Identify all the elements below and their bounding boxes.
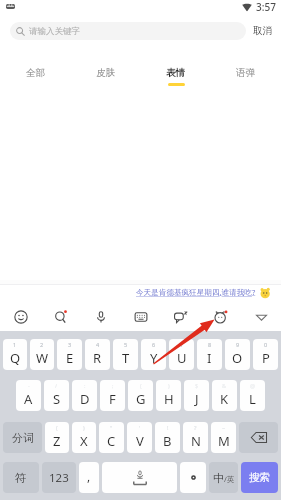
button[interactable]: 符 xyxy=(3,462,39,493)
staticText: 搜索 xyxy=(249,471,270,484)
button[interactable]: $ xyxy=(184,380,209,411)
staticText: 分词 xyxy=(12,431,34,445)
staticText: W xyxy=(36,349,49,367)
staticText: ( xyxy=(56,424,58,431)
staticText: 7 xyxy=(180,341,184,348)
button[interactable]: 语弹 xyxy=(211,48,281,90)
staticText: ; xyxy=(112,382,114,389)
staticText: : xyxy=(84,382,86,389)
staticText: U xyxy=(177,349,187,367)
button[interactable]: 7 xyxy=(169,339,194,370)
button[interactable]: 5 xyxy=(113,339,138,370)
staticText: ) xyxy=(83,424,85,431)
staticText: ' xyxy=(139,424,141,431)
button[interactable]: 表情 xyxy=(141,48,211,90)
staticText: 2 xyxy=(40,341,44,348)
staticText: 皮肤 xyxy=(96,67,116,79)
staticText: / xyxy=(55,382,58,389)
button[interactable]: ( xyxy=(128,380,153,411)
staticText: 0 xyxy=(264,341,268,348)
button[interactable]: @ xyxy=(240,380,265,411)
staticText: Z xyxy=(53,432,61,450)
button[interactable]: 取消 xyxy=(253,25,273,37)
button[interactable]: ; xyxy=(100,380,125,411)
button[interactable]: 123 xyxy=(42,462,76,493)
staticText: 3:57 xyxy=(256,0,276,14)
staticText: V xyxy=(136,432,144,450)
button[interactable]: 请输入关键字 xyxy=(10,22,246,40)
staticText: J xyxy=(195,390,199,408)
button[interactable]: 4 xyxy=(85,339,110,370)
button[interactable]: 皮肤 xyxy=(71,48,141,90)
staticText: 5 xyxy=(124,341,128,348)
button[interactable]: ! xyxy=(155,422,180,453)
button[interactable]: Emoji xyxy=(0,303,41,331)
button[interactable]: ) xyxy=(156,380,181,411)
staticText: 全部 xyxy=(26,67,46,79)
staticText: Q xyxy=(10,349,21,367)
staticText: N xyxy=(191,432,201,450)
button[interactable]: 搜索 xyxy=(241,462,278,493)
button[interactable]: 3 xyxy=(57,339,82,370)
staticText: $ xyxy=(195,382,199,389)
staticText: O xyxy=(232,349,243,367)
button[interactable]: Avatar xyxy=(201,303,241,331)
button[interactable]: Keyboard xyxy=(121,303,161,331)
button[interactable]: Search xyxy=(41,303,81,331)
staticText: 取消 xyxy=(253,25,273,37)
button[interactable]: ( xyxy=(45,422,69,453)
staticText: ( xyxy=(140,382,142,389)
staticText: ? xyxy=(194,424,197,431)
button[interactable]: 1 xyxy=(3,339,27,370)
staticText: & xyxy=(222,382,227,389)
staticText: H xyxy=(164,390,174,408)
staticText: G xyxy=(136,390,146,408)
button[interactable]: / xyxy=(44,380,69,411)
staticText: 符 xyxy=(15,471,27,485)
staticText: 语弹 xyxy=(236,67,256,79)
button[interactable]: ? xyxy=(183,422,208,453)
staticText: ~ xyxy=(222,424,226,431)
staticText: , xyxy=(87,468,91,484)
staticText: B xyxy=(163,432,172,450)
button[interactable]: ' xyxy=(127,422,152,453)
staticText: E xyxy=(66,349,74,367)
staticText: ! xyxy=(167,424,169,431)
button[interactable]: 2 xyxy=(30,339,54,370)
button[interactable]: : xyxy=(72,380,97,411)
staticText: P xyxy=(262,349,270,367)
button[interactable]: Collapse keyboard xyxy=(241,303,281,331)
staticText: 中 xyxy=(213,471,224,485)
staticText: X xyxy=(80,432,88,450)
staticText: 123 xyxy=(49,470,69,486)
staticText: 9 xyxy=(236,341,240,348)
staticText: A xyxy=(24,390,33,408)
button[interactable]: 全部 xyxy=(0,48,71,90)
button[interactable]: 9 xyxy=(225,339,250,370)
button[interactable]: 8 xyxy=(197,339,222,370)
button[interactable]: 6 xyxy=(141,339,166,370)
staticText: 今天是肯德基疯狂星期四,谁请我吃? xyxy=(136,287,256,297)
button[interactable]: Space xyxy=(102,462,177,493)
staticText: 请输入关键字 xyxy=(29,26,80,37)
button[interactable]: - xyxy=(16,380,41,411)
button[interactable]: Voice input xyxy=(81,303,121,331)
button[interactable]: , xyxy=(79,462,99,493)
button[interactable]: ) xyxy=(72,422,96,453)
button[interactable]: 0 xyxy=(253,339,278,370)
staticText: Y xyxy=(150,349,158,367)
button[interactable]: Period xyxy=(180,462,206,493)
button[interactable]: Backspace xyxy=(239,422,278,453)
staticText: - xyxy=(28,382,30,389)
staticText: K xyxy=(220,390,229,408)
button[interactable]: 分词 xyxy=(3,422,42,453)
button[interactable]: Stickers xyxy=(161,303,201,331)
button[interactable]: 中 xyxy=(209,462,238,493)
button[interactable]: & xyxy=(212,380,237,411)
staticText: 表情 xyxy=(166,67,186,79)
staticText: @ xyxy=(250,382,255,389)
staticText: 4 xyxy=(96,341,100,348)
button[interactable]: " xyxy=(99,422,124,453)
button[interactable]: ~ xyxy=(211,422,236,453)
staticText: " xyxy=(110,424,113,431)
